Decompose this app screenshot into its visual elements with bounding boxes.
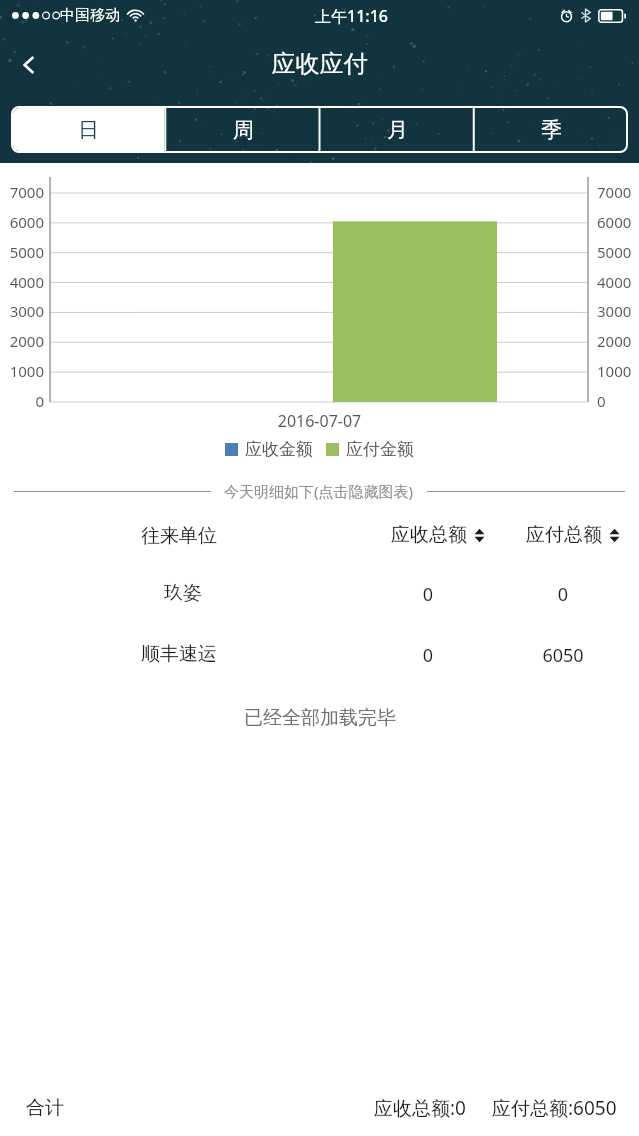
button[interactable]: 应收总额 [391, 523, 485, 547]
staticText: 顺丰速运 [141, 642, 217, 666]
staticText: 中国移动 [60, 6, 120, 25]
staticText: 应付总额 [526, 523, 602, 547]
staticText: 往来单位 [141, 524, 217, 548]
staticText: 6000 [597, 212, 639, 232]
staticText: 周 [233, 117, 254, 143]
staticText: 0 [396, 582, 460, 607]
staticText: 6000 [2, 212, 44, 232]
staticText: 应付总额:6050 [492, 1095, 617, 1121]
staticText: 5000 [2, 242, 44, 262]
button[interactable]: 周 [166, 106, 320, 153]
staticText: 应付金额 [346, 439, 414, 460]
staticText: 已经全部加载完毕 [244, 706, 396, 730]
staticText: 应收总额:0 [374, 1095, 466, 1121]
button[interactable]: 月 [320, 106, 474, 153]
staticText: 2016-07-07 [0, 410, 639, 432]
staticText: 季 [541, 117, 562, 143]
staticText: 3000 [2, 301, 44, 321]
button[interactable]: 顺丰速运 [0, 624, 639, 685]
staticText: 5000 [597, 242, 639, 262]
staticText: 0 [396, 643, 460, 668]
staticText: 7000 [2, 182, 44, 202]
staticText: 4000 [2, 272, 44, 292]
staticText: 1000 [2, 361, 44, 381]
button[interactable]: Back [0, 40, 58, 90]
staticText: 应收金额 [245, 439, 313, 460]
button[interactable]: 日 [13, 108, 164, 151]
staticText: 月 [387, 117, 408, 143]
staticText: 0 [530, 582, 596, 607]
staticText: 0 [597, 391, 639, 411]
staticText: 6050 [530, 643, 596, 668]
button[interactable]: 季 [474, 106, 628, 153]
button[interactable]: 今天明细如下(点击隐藏图表) [0, 473, 639, 509]
staticText: 2000 [2, 331, 44, 351]
staticText: 上午11:16 [315, 5, 388, 27]
staticText: 应收总额 [391, 523, 467, 547]
staticText: 日 [78, 117, 99, 143]
staticText: 今天明细如下(点击隐藏图表) [224, 481, 414, 501]
staticText: 1000 [597, 361, 639, 381]
staticText: 合计 [26, 1096, 64, 1120]
staticText: 应收应付 [0, 49, 639, 79]
staticText: 7000 [597, 182, 639, 202]
staticText: 4000 [597, 272, 639, 292]
staticText: 3000 [597, 301, 639, 321]
staticText: 玖姿 [164, 581, 202, 605]
button[interactable]: 玖姿 [0, 563, 639, 624]
staticText: 2000 [597, 331, 639, 351]
staticText: 0 [2, 391, 44, 411]
button[interactable]: 应付总额 [526, 523, 620, 547]
